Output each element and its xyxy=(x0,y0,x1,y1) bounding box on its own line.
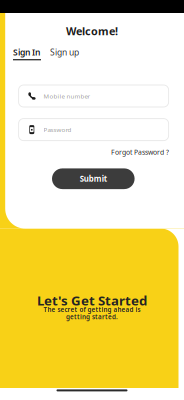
staticText: Sign In xyxy=(13,46,40,58)
staticText: Forgot Password ? xyxy=(111,147,169,157)
staticText: getting started. xyxy=(66,313,118,321)
staticText: Submit xyxy=(80,173,107,184)
button[interactable]: Sign up xyxy=(50,46,79,58)
staticText: Sign up xyxy=(50,46,79,58)
staticText: Mobile number xyxy=(44,92,91,100)
button[interactable]: Submit xyxy=(52,168,135,189)
staticText: Let's Get Started xyxy=(37,291,147,309)
staticText: Welcome! xyxy=(66,24,118,38)
button[interactable]: Sign In xyxy=(13,46,41,59)
staticText: Password xyxy=(44,125,72,134)
staticText: The secret of getting ahead is xyxy=(43,305,140,314)
button[interactable]: Forgot Password ? xyxy=(111,147,169,157)
